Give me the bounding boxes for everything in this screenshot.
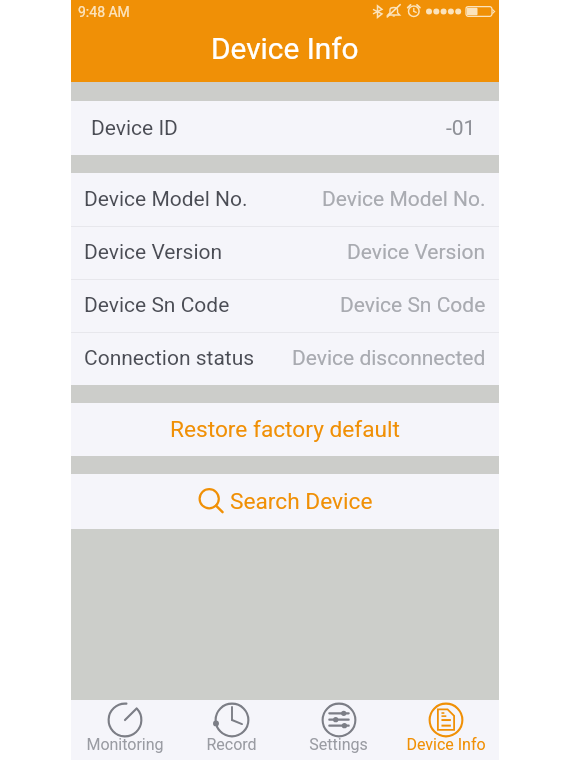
staticText: Monitoring [86, 735, 164, 754]
button[interactable]: Device Model No. [71, 173, 499, 226]
staticText: Device Sn Code [84, 293, 230, 318]
staticText: Device disconnected [292, 346, 486, 371]
button[interactable]: Device Version [71, 226, 499, 279]
button[interactable]: Device Info [392, 700, 499, 760]
staticText: Device Sn Code [340, 293, 486, 318]
staticText: Device Info [406, 735, 486, 754]
button[interactable]: Monitoring [71, 700, 178, 760]
button[interactable]: Restore factory default [71, 403, 499, 456]
staticText: Connection status [84, 346, 255, 371]
staticText: Settings [309, 735, 368, 754]
staticText: -01 [446, 116, 476, 141]
staticText: Device Version [347, 240, 486, 265]
button[interactable]: Connection status [71, 332, 499, 385]
staticText: Device Info [211, 31, 359, 66]
staticText: Restore factory default [170, 416, 400, 443]
button[interactable]: Settings [285, 700, 392, 760]
staticText: Device ID [91, 116, 178, 141]
staticText: Record [206, 735, 257, 754]
staticText: Device Model No. [84, 187, 248, 212]
button[interactable]: Device Sn Code [71, 279, 499, 332]
button[interactable]: Record [178, 700, 285, 760]
button[interactable]: Search Device [71, 474, 499, 529]
staticText: Search Device [230, 488, 373, 515]
staticText: Device Version [84, 240, 223, 265]
button[interactable]: Device ID [71, 101, 499, 155]
staticText: Device Model No. [322, 187, 486, 212]
staticText: 9:48 AM [78, 4, 130, 20]
